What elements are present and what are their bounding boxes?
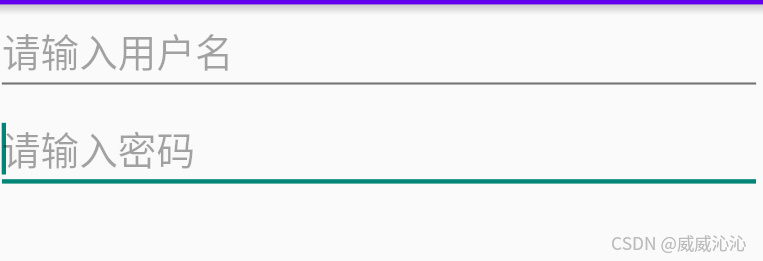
other: App bar xyxy=(0,0,763,8)
staticText: 请输入密码 xyxy=(2,120,195,176)
staticText: 请输入用户名 xyxy=(2,22,234,78)
staticText: CSDN @威威沁沁 xyxy=(611,230,747,255)
button[interactable]: 请输入密码 xyxy=(0,118,763,188)
button[interactable]: 请输入用户名 xyxy=(0,20,763,85)
